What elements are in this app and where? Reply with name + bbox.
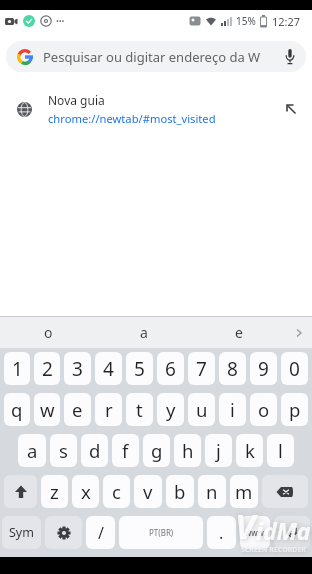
staticText: 2 bbox=[42, 356, 53, 382]
button[interactable]: Nova guia bbox=[0, 86, 312, 132]
staticText: d bbox=[89, 438, 101, 463]
button[interactable] bbox=[262, 475, 308, 508]
staticText: a bbox=[27, 438, 38, 463]
button[interactable]: l bbox=[267, 434, 294, 467]
button[interactable] bbox=[45, 516, 82, 549]
button[interactable]: p bbox=[281, 393, 308, 426]
staticText: idMa bbox=[256, 515, 311, 546]
staticText: r bbox=[105, 397, 113, 422]
staticText: v bbox=[143, 479, 153, 504]
button[interactable]: o bbox=[0, 317, 96, 348]
staticText: 5 bbox=[134, 356, 145, 382]
staticText: / bbox=[98, 522, 104, 544]
staticText: V bbox=[235, 503, 256, 549]
staticText: g bbox=[151, 438, 163, 463]
button[interactable]: . bbox=[207, 516, 236, 549]
button[interactable]: 7 bbox=[188, 352, 215, 385]
staticText: Pesquisar ou digitar endereço da W bbox=[43, 48, 261, 66]
button[interactable]: b bbox=[166, 475, 194, 508]
button[interactable]: x bbox=[72, 475, 99, 508]
button[interactable] bbox=[4, 475, 37, 508]
staticText: s bbox=[59, 438, 68, 463]
staticText: 4 bbox=[103, 356, 114, 382]
button[interactable] bbox=[286, 317, 312, 348]
staticText: Sym bbox=[9, 524, 34, 541]
button[interactable]: t bbox=[126, 393, 153, 426]
staticText: y bbox=[166, 397, 176, 422]
staticText: l bbox=[278, 438, 283, 463]
button[interactable]: Pesquisar ou digitar endereço da W bbox=[6, 41, 306, 72]
button[interactable]: Sym bbox=[2, 516, 41, 549]
button[interactable]: e bbox=[64, 393, 91, 426]
button[interactable]: www. bbox=[240, 516, 270, 549]
button[interactable]: j bbox=[205, 434, 232, 467]
button[interactable]: a bbox=[96, 317, 191, 348]
staticText: k bbox=[245, 438, 255, 463]
staticText: b bbox=[174, 479, 186, 504]
staticText: m bbox=[235, 479, 253, 504]
staticText: i bbox=[230, 397, 235, 422]
button[interactable]: 6 bbox=[157, 352, 184, 385]
button[interactable]: 0 bbox=[281, 352, 308, 385]
button[interactable]: 1 bbox=[4, 352, 30, 385]
staticText: n bbox=[206, 479, 218, 504]
button[interactable]: / bbox=[86, 516, 115, 549]
staticText: PT(BR) bbox=[149, 527, 174, 538]
button[interactable]: s bbox=[50, 434, 77, 467]
staticText: c bbox=[112, 479, 121, 504]
button[interactable]: z bbox=[41, 475, 68, 508]
staticText: w bbox=[40, 397, 55, 422]
staticText: 8 bbox=[227, 356, 238, 382]
staticText: . bbox=[219, 522, 224, 544]
button[interactable]: g bbox=[143, 434, 170, 467]
staticText: j bbox=[216, 438, 221, 463]
button[interactable]: 8 bbox=[219, 352, 246, 385]
staticText: a bbox=[140, 323, 148, 342]
staticText: x bbox=[81, 479, 91, 504]
button[interactable]: d bbox=[81, 434, 108, 467]
staticText: 15% bbox=[236, 14, 256, 28]
button[interactable]: m bbox=[230, 475, 258, 508]
button[interactable]: 9 bbox=[250, 352, 277, 385]
button[interactable]: o bbox=[250, 393, 277, 426]
staticText: p bbox=[289, 397, 301, 422]
staticText: 6 bbox=[165, 356, 176, 382]
button[interactable]: 2 bbox=[34, 352, 60, 385]
button[interactable]: 4 bbox=[95, 352, 122, 385]
button[interactable]: w bbox=[34, 393, 60, 426]
staticText: h bbox=[182, 438, 194, 463]
staticText: 1 bbox=[12, 356, 23, 382]
button[interactable]: h bbox=[174, 434, 201, 467]
staticText: 9 bbox=[258, 356, 269, 382]
staticText: e bbox=[235, 323, 243, 342]
button[interactable]: c bbox=[103, 475, 130, 508]
button[interactable]: e bbox=[191, 317, 286, 348]
staticText: o bbox=[258, 397, 270, 422]
button[interactable]: u bbox=[188, 393, 215, 426]
button[interactable]: r bbox=[95, 393, 122, 426]
staticText: www. bbox=[245, 527, 266, 538]
staticText: e bbox=[72, 397, 83, 422]
button[interactable]: a bbox=[18, 434, 46, 467]
button[interactable]: y bbox=[157, 393, 184, 426]
button[interactable]: q bbox=[4, 393, 30, 426]
button[interactable]: f bbox=[112, 434, 139, 467]
staticText: SCREEN RECORDER bbox=[241, 545, 306, 555]
staticText: f bbox=[122, 438, 129, 463]
button[interactable]: k bbox=[236, 434, 263, 467]
staticText: z bbox=[50, 479, 59, 504]
button[interactable]: v bbox=[134, 475, 162, 508]
button[interactable]: 5 bbox=[126, 352, 153, 385]
staticText: o bbox=[44, 323, 53, 342]
button[interactable]: 3 bbox=[64, 352, 91, 385]
staticText: u bbox=[196, 397, 208, 422]
staticText: q bbox=[11, 397, 23, 422]
staticText: t bbox=[136, 397, 143, 422]
staticText: ... bbox=[56, 11, 65, 25]
button[interactable]: PT(BR) bbox=[119, 516, 203, 549]
staticText: 0 bbox=[289, 356, 300, 382]
button[interactable]: i bbox=[219, 393, 246, 426]
staticText: 7 bbox=[196, 356, 207, 382]
button[interactable]: n bbox=[198, 475, 226, 508]
button[interactable] bbox=[274, 516, 310, 549]
